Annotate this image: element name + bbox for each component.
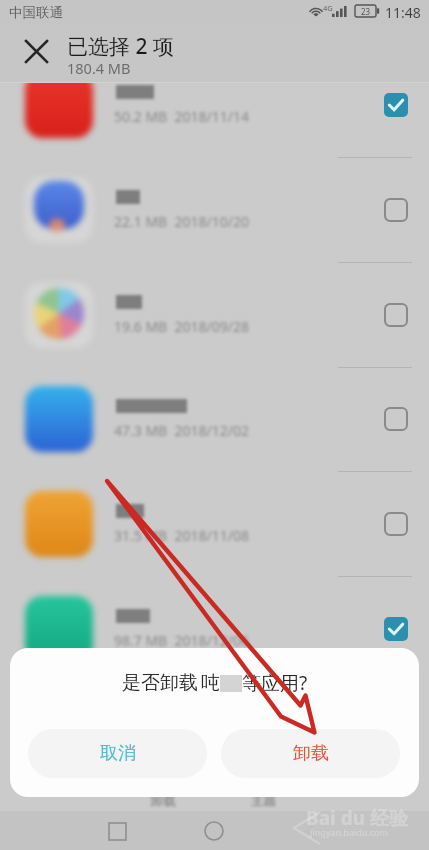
staticText: 47.3 MB 2018/12/02 [114, 421, 249, 440]
staticText: 等应用? [242, 670, 308, 696]
staticText: 是否卸载 [122, 671, 198, 695]
button[interactable]: Select app [384, 93, 408, 117]
button[interactable] [0, 53, 429, 157]
button[interactable]: 卸载 [221, 729, 400, 778]
button[interactable]: 主题 [235, 792, 291, 810]
button[interactable]: Back [291, 820, 331, 842]
staticText: Bai du 经验 [306, 805, 408, 831]
staticText: 中国联通 [9, 4, 63, 21]
button[interactable] [0, 577, 429, 681]
staticText: 98.7 MB 2018/12/06 [114, 631, 249, 650]
button[interactable]: Select app [384, 617, 408, 641]
button[interactable] [0, 472, 429, 576]
staticText: 31.5 MB 2018/11/08 [114, 526, 249, 545]
staticText: 11:48 [385, 3, 421, 22]
staticText: 吨 [201, 671, 220, 695]
button[interactable]: Select app [384, 407, 408, 431]
staticText: jingyan.baidu.com [310, 826, 388, 838]
staticText: 19.6 MB 2018/09/28 [114, 317, 249, 336]
button[interactable]: Home [194, 820, 234, 842]
staticText: 23 [361, 6, 371, 17]
staticText: 卸载 [151, 793, 176, 809]
staticText: 50.2 MB 2018/11/14 [114, 107, 249, 126]
button[interactable]: Close [16, 31, 56, 71]
button[interactable] [0, 367, 429, 471]
button[interactable]: Select app [384, 198, 408, 222]
button[interactable]: Select app [384, 512, 408, 536]
button[interactable] [0, 158, 429, 262]
button[interactable]: Recents [97, 820, 137, 842]
staticText: 卸载 [293, 742, 329, 765]
staticText: 22.1 MB 2018/10/20 [114, 212, 249, 231]
button[interactable]: 取消 [28, 729, 207, 778]
button[interactable]: Select app [384, 303, 408, 327]
staticText: 已选择 2 项 [67, 32, 174, 61]
button[interactable]: 卸载 [135, 792, 191, 810]
staticText: 180.4 MB [67, 58, 131, 78]
staticText: 主题 [251, 793, 276, 809]
staticText: 4G [323, 3, 333, 13]
button[interactable] [0, 263, 429, 367]
staticText: 取消 [100, 742, 136, 765]
